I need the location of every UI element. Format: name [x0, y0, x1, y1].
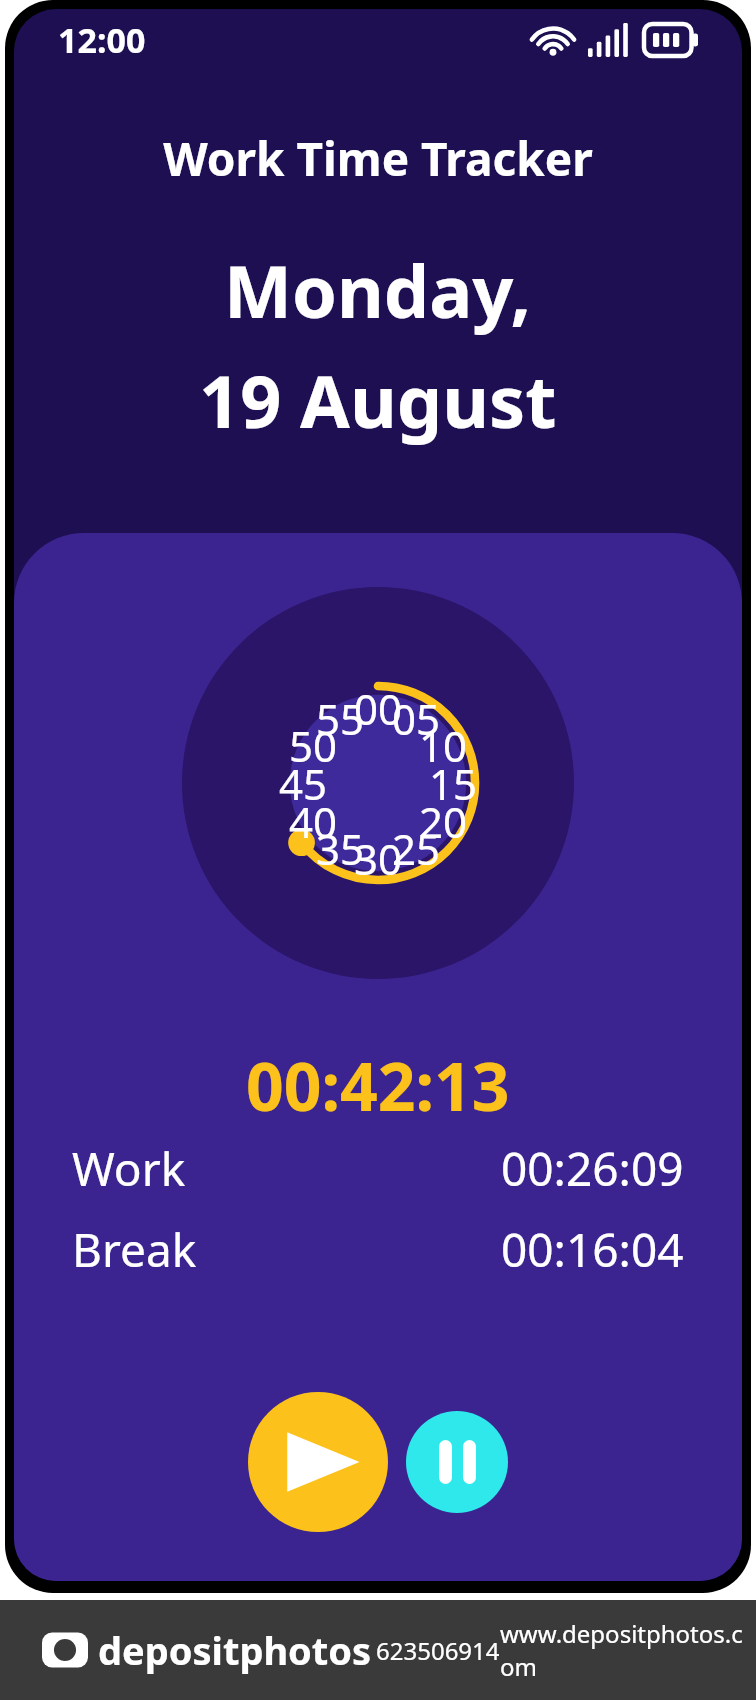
staticText: 00:42:13 — [246, 1040, 510, 1130]
staticText: 05 — [392, 690, 441, 747]
staticText: 623506914 — [376, 1634, 500, 1667]
button[interactable]: Pause — [406, 1411, 508, 1513]
staticText: 30 — [354, 830, 403, 887]
staticText: Monday, — [224, 241, 532, 339]
staticText: Work Time Tracker — [163, 127, 593, 190]
staticText: 10 — [419, 717, 468, 774]
staticText: 50 — [289, 717, 338, 774]
button[interactable]: Start — [248, 1392, 388, 1532]
staticText: 19 August — [199, 351, 557, 449]
staticText: 35 — [316, 820, 365, 877]
staticText: depositphotos — [98, 1624, 372, 1676]
staticText: 45 — [279, 755, 328, 812]
staticText: 25 — [392, 820, 441, 877]
staticText: 55 — [316, 690, 365, 747]
staticText: 00 — [354, 680, 403, 737]
staticText: Break — [72, 1218, 197, 1281]
staticText: www.depositphotos.com — [500, 1617, 756, 1683]
staticText: 15 — [429, 755, 478, 812]
staticText: 00:26:09 — [501, 1137, 684, 1200]
staticText: 00:16:04 — [501, 1218, 684, 1281]
staticText: 20 — [419, 793, 468, 850]
staticText: 12:00 — [58, 17, 146, 63]
staticText: Work — [72, 1137, 186, 1200]
staticText: 40 — [289, 793, 338, 850]
